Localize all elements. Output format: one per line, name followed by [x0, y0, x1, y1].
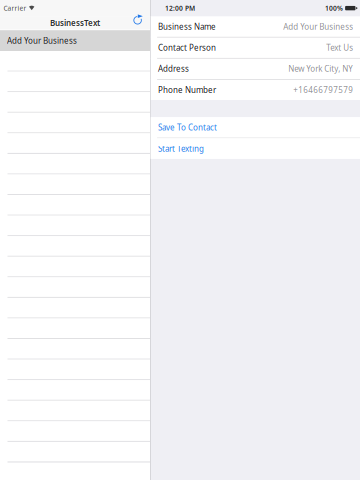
staticText: Carrier: [4, 4, 27, 13]
staticText: Text Us: [326, 42, 353, 53]
staticText: Save To Contact: [158, 122, 217, 133]
button[interactable]: Refresh: [130, 16, 147, 29]
staticText: Add Your Business: [7, 35, 77, 46]
staticText: Phone Number: [158, 84, 216, 95]
staticText: 100%: [325, 4, 343, 13]
staticText: 12:00 PM: [165, 4, 195, 13]
staticText: New York City, NY: [288, 63, 353, 74]
staticText: Address: [158, 63, 189, 74]
button[interactable]: Start Texting: [151, 138, 360, 159]
button[interactable]: Save To Contact: [151, 117, 360, 138]
staticText: Business Name: [158, 21, 216, 32]
staticText: BusinessText: [50, 18, 100, 28]
staticText: Contact Person: [158, 42, 216, 53]
button[interactable]: Add Your Business: [0, 30, 150, 51]
staticText: +16466797579: [293, 84, 353, 95]
staticText: Start Texting: [158, 143, 204, 154]
staticText: Add Your Business: [283, 21, 353, 32]
